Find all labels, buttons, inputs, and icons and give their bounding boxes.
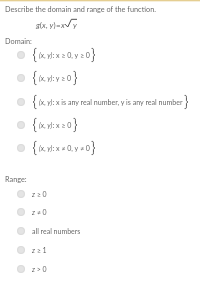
button[interactable]: z ≥ 0 xyxy=(0,186,200,202)
staticText: z ≠ 0 xyxy=(32,208,47,216)
staticText: x xyxy=(61,20,65,30)
staticText: all real numbers xyxy=(32,227,81,235)
button[interactable]: (x, y): x ≥ 0 xyxy=(0,116,200,134)
button[interactable]: z ≠ 0 xyxy=(0,204,200,220)
staticText: y xyxy=(73,20,77,30)
staticText: (x, y): x is any real number, y is any r… xyxy=(39,98,183,107)
staticText: (x, y): x ≥ 0 xyxy=(39,121,72,130)
staticText: Range: xyxy=(5,175,27,184)
button[interactable]: (x, y): x ≠ 0, y ≠ 0 xyxy=(0,139,200,157)
staticText: = xyxy=(56,20,61,30)
staticText: z ≥ 0 xyxy=(32,190,47,198)
button[interactable]: (x, y): x ≥ 0, y ≥ 0 xyxy=(0,46,200,64)
button[interactable]: all real numbers xyxy=(0,223,200,239)
staticText: (x, y): x ≠ 0, y ≠ 0 xyxy=(39,144,90,153)
button[interactable]: z ≥ 1 xyxy=(0,242,200,258)
button[interactable]: z > 0 xyxy=(0,261,200,277)
staticText: Describe the domain and range of the fun… xyxy=(5,5,156,14)
button[interactable]: (x, y): y ≥ 0 xyxy=(0,69,200,87)
staticText: (x, y): x ≥ 0, y ≥ 0 xyxy=(39,51,90,60)
staticText: z ≥ 1 xyxy=(32,246,47,254)
staticText: g(x, y) xyxy=(36,20,56,30)
button[interactable]: (x, y): x is any real number, y is any r… xyxy=(0,93,200,111)
staticText: Domain: xyxy=(5,37,32,46)
staticText: (x, y): y ≥ 0 xyxy=(39,74,72,83)
staticText: z > 0 xyxy=(32,265,47,273)
